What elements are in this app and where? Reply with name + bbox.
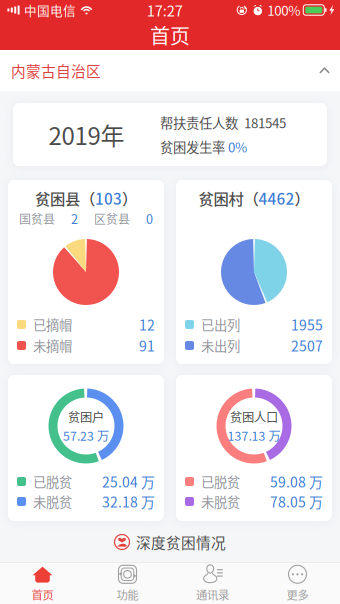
staticText: 未摘帽 [33, 336, 72, 355]
staticText: 贫困县（ [35, 187, 95, 209]
staticText: 区贫县 [94, 210, 130, 227]
staticText: 32.18 万 [102, 491, 155, 512]
button[interactable]: 功能 [85, 562, 170, 604]
staticText: 深度贫困情况 [136, 531, 226, 553]
staticText: ） [122, 187, 137, 209]
staticText: 贫困村（ [198, 187, 258, 209]
staticText: 1955 [291, 314, 323, 335]
staticText: 4462 [258, 187, 294, 209]
staticText: 100% [267, 0, 300, 20]
staticText: 功能 [116, 586, 138, 603]
staticText: 中国电信 [24, 1, 76, 19]
staticText: 78.05 万 [270, 491, 323, 512]
staticText: 17:27 [147, 0, 183, 21]
staticText: 2019年 [48, 117, 124, 152]
staticText: 首页 [150, 20, 190, 49]
staticText: 未出列 [201, 336, 240, 355]
button[interactable]: 深度贫困情况 [114, 527, 226, 557]
staticText: 贫困发生率 [160, 137, 228, 156]
button[interactable]: 首页 [0, 562, 85, 604]
staticText: 国贫县 [19, 210, 55, 227]
staticText: 25.04 万 [102, 471, 155, 492]
staticText: 帮扶责任人数 [160, 113, 238, 132]
staticText: 12 [139, 314, 155, 335]
button[interactable]: 通讯录 [170, 562, 255, 604]
button[interactable]: 内蒙古自治区 [0, 50, 340, 91]
staticText: 91 [139, 335, 155, 356]
staticText: 已脱贫 [33, 472, 72, 491]
staticText: 103 [95, 187, 122, 209]
staticText: 首页 [31, 586, 53, 603]
staticText: 未脱贫 [201, 492, 240, 511]
staticText: 通讯录 [196, 586, 229, 603]
staticText: 181545 [238, 113, 286, 132]
button[interactable]: 更多 [255, 562, 340, 604]
staticText: 已摘帽 [33, 315, 72, 334]
staticText: 内蒙古自治区 [11, 60, 101, 81]
staticText: 2507 [291, 335, 323, 356]
staticText: 贫困人口 [230, 408, 278, 425]
staticText: 137.13 万 [227, 426, 280, 444]
staticText: 已脱贫 [201, 472, 240, 491]
staticText: 59.08 万 [270, 471, 323, 492]
staticText: 更多 [286, 586, 308, 603]
staticText: 未脱贫 [33, 492, 72, 511]
staticText: 0 [146, 209, 153, 228]
staticText: 57.23 万 [63, 426, 109, 444]
staticText: 贫困户 [68, 408, 104, 425]
staticText: 0% [228, 137, 247, 156]
staticText: ） [294, 187, 309, 209]
staticText: 已出列 [201, 315, 240, 334]
staticText: 2 [71, 209, 78, 228]
